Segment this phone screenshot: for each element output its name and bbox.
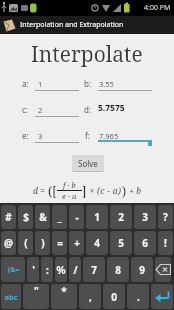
staticText: ,: [89, 290, 92, 304]
staticText: ': [32, 263, 35, 277]
button[interactable]: Solve: [72, 155, 104, 171]
staticText: +: [74, 236, 80, 250]
staticText: 5.7575: [98, 102, 125, 114]
staticText: %: [56, 263, 66, 277]
staticText: 0: [111, 290, 117, 304]
button[interactable]: 9: [131, 257, 153, 282]
staticText: @: [4, 236, 13, 250]
staticText: 1: [38, 79, 43, 89]
button[interactable]: -: [69, 205, 84, 229]
button[interactable]: 5: [110, 231, 132, 255]
staticText: 6: [142, 236, 148, 250]
staticText: ): [41, 236, 45, 250]
staticText: 3: [142, 210, 148, 224]
button[interactable]: +: [69, 231, 84, 255]
staticText: e − a: [62, 191, 77, 201]
staticText: ([: [48, 183, 57, 199]
button[interactable]: %: [55, 257, 67, 282]
staticText: b:: [84, 78, 92, 89]
staticText: #: [5, 210, 12, 224]
staticText: f − b: [63, 180, 76, 190]
staticText: abc: [4, 292, 18, 302]
staticText: 1: [94, 210, 100, 224]
button[interactable]: /: [69, 257, 81, 282]
staticText: -: [75, 210, 79, 224]
button[interactable]: 0: [103, 284, 125, 309]
staticText: 4: [94, 236, 100, 250]
button[interactable]: 8: [107, 257, 129, 282]
button[interactable]: 6: [134, 231, 156, 255]
staticText: 9: [139, 263, 145, 277]
staticText: *: [61, 284, 67, 298]
staticText: (: [24, 236, 28, 250]
button[interactable]: ?: [158, 205, 173, 229]
staticText: 7.965: [99, 131, 119, 141]
staticText: !: [164, 236, 167, 250]
button[interactable]: (: [18, 231, 33, 255]
button[interactable]: [155, 257, 171, 282]
button[interactable]: 1: [86, 205, 108, 229]
button[interactable]: :: [41, 257, 53, 282]
staticText: c:: [22, 104, 28, 115]
staticText: ": [34, 284, 39, 298]
button[interactable]: .: [127, 284, 149, 309]
button[interactable]: 4: [86, 231, 108, 255]
button[interactable]: $: [18, 205, 33, 229]
staticText: 2: [38, 105, 43, 115]
button[interactable]: *: [51, 284, 77, 309]
button[interactable]: _: [52, 205, 67, 229]
staticText: × (c − a): [87, 185, 122, 197]
staticText: /: [73, 263, 78, 277]
staticText: &: [39, 210, 47, 224]
staticText: d =: [33, 185, 48, 197]
staticText: Interpolate: [31, 40, 143, 69]
staticText: d:: [84, 104, 92, 115]
button[interactable]: abc: [1, 284, 21, 309]
button[interactable]: 2: [110, 205, 132, 229]
button[interactable]: @: [1, 231, 16, 255]
staticText: 4:00 PM: [144, 3, 171, 13]
button[interactable]: 3: [134, 205, 156, 229]
button[interactable]: [151, 284, 173, 309]
staticText: 3: [38, 131, 43, 141]
button[interactable]: #: [1, 205, 16, 229]
button[interactable]: {&=: [1, 257, 25, 282]
button[interactable]: &: [35, 205, 50, 229]
staticText: + b: [127, 185, 141, 197]
button[interactable]: ': [27, 257, 39, 282]
button[interactable]: !: [158, 231, 173, 255]
staticText: Solve: [78, 158, 98, 169]
staticText: Interpolation and Extrapolation: [20, 20, 124, 30]
button[interactable]: ,: [79, 284, 101, 309]
staticText: ): [122, 183, 127, 199]
staticText: a:: [22, 78, 29, 89]
staticText: _: [57, 210, 62, 224]
staticText: e:: [22, 130, 29, 141]
staticText: ]: [82, 183, 87, 199]
staticText: .: [137, 290, 140, 304]
staticText: 2: [118, 210, 124, 224]
staticText: 3.55: [99, 79, 114, 89]
staticText: f:: [85, 130, 90, 141]
button[interactable]: =: [52, 231, 67, 255]
staticText: =: [57, 236, 63, 250]
button[interactable]: ): [35, 231, 50, 255]
staticText: ?: [163, 210, 168, 224]
staticText: {&=: [7, 265, 20, 275]
staticText: 7: [91, 263, 97, 277]
button[interactable]: 7: [83, 257, 105, 282]
staticText: :: [46, 263, 49, 277]
button[interactable]: Interpolation and Extrapolation: [0, 16, 174, 34]
staticText: $: [23, 210, 29, 224]
staticText: 8: [115, 263, 121, 277]
staticText: 5: [118, 236, 124, 250]
button[interactable]: ": [23, 284, 49, 309]
